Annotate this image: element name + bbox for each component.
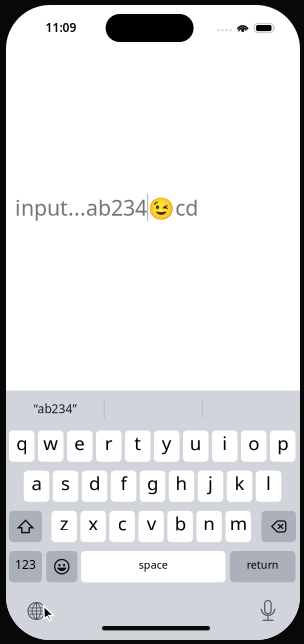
button[interactable]: Dictate xyxy=(6,5,20,26)
staticText: u xyxy=(190,431,202,455)
button[interactable]: l xyxy=(6,5,31,36)
staticText: d xyxy=(89,471,100,495)
button[interactable]: Delete xyxy=(6,5,40,36)
button[interactable]: o xyxy=(6,5,31,36)
button[interactable]: c xyxy=(6,5,31,36)
staticText: v xyxy=(147,511,156,536)
staticText: return xyxy=(247,558,279,572)
staticText: k xyxy=(235,471,245,495)
staticText: i xyxy=(222,431,227,455)
staticText: e xyxy=(74,431,85,455)
staticText: y xyxy=(162,431,172,455)
staticText: j xyxy=(208,471,213,495)
button[interactable]: return xyxy=(6,5,71,36)
staticText: c xyxy=(118,511,127,536)
staticText: q xyxy=(16,431,27,455)
staticText: z xyxy=(60,511,69,536)
button[interactable]: k xyxy=(6,5,31,36)
button[interactable]: a xyxy=(6,5,31,36)
button[interactable]: s xyxy=(6,5,31,36)
button[interactable]: q xyxy=(6,5,31,36)
staticText: x xyxy=(88,511,98,536)
staticText: w xyxy=(43,431,58,455)
button[interactable]: 123 xyxy=(6,5,39,36)
button[interactable]: i xyxy=(6,5,31,36)
staticText: h xyxy=(176,471,188,495)
staticText: p xyxy=(277,431,288,455)
staticText: b xyxy=(175,511,186,536)
button[interactable]: j xyxy=(6,5,31,36)
button[interactable]: Next keyboard xyxy=(6,5,23,22)
staticText: g xyxy=(147,471,158,495)
button[interactable]: Emoji xyxy=(6,5,37,36)
button[interactable]: n xyxy=(6,5,31,36)
staticText: s xyxy=(61,471,70,495)
button[interactable]: w xyxy=(6,5,31,36)
staticText: r xyxy=(105,431,113,455)
button[interactable]: u xyxy=(6,5,31,36)
button[interactable]: p xyxy=(6,5,31,36)
button[interactable]: g xyxy=(6,5,31,36)
button[interactable]: y xyxy=(6,5,31,36)
staticText: n xyxy=(203,511,215,536)
staticText: f xyxy=(120,471,126,495)
button[interactable]: space xyxy=(6,5,151,36)
button[interactable]: m xyxy=(6,5,31,36)
button[interactable]: z xyxy=(6,5,31,36)
staticText: space xyxy=(139,558,168,572)
button[interactable]: h xyxy=(6,5,31,36)
staticText: m xyxy=(230,511,247,536)
staticText: 123 xyxy=(15,556,36,572)
staticText: o xyxy=(248,431,259,455)
button[interactable]: “ab234” xyxy=(6,393,104,425)
button[interactable]: r xyxy=(6,5,31,36)
button[interactable]: t xyxy=(6,5,31,36)
button[interactable]: d xyxy=(6,5,31,36)
button[interactable]: v xyxy=(6,5,31,36)
staticText: 11:09 xyxy=(45,19,76,35)
button[interactable]: b xyxy=(6,5,31,36)
staticText: input...ab234 xyxy=(15,193,147,222)
button[interactable]: f xyxy=(6,5,31,36)
staticText: l xyxy=(266,471,271,495)
staticText: t xyxy=(134,431,141,455)
staticText: 😉cd xyxy=(148,193,198,222)
staticText: “ab234” xyxy=(33,401,76,417)
staticText: a xyxy=(32,471,42,495)
button[interactable]: Shift xyxy=(6,5,39,36)
button[interactable]: e xyxy=(6,5,31,36)
button[interactable]: x xyxy=(6,5,31,36)
